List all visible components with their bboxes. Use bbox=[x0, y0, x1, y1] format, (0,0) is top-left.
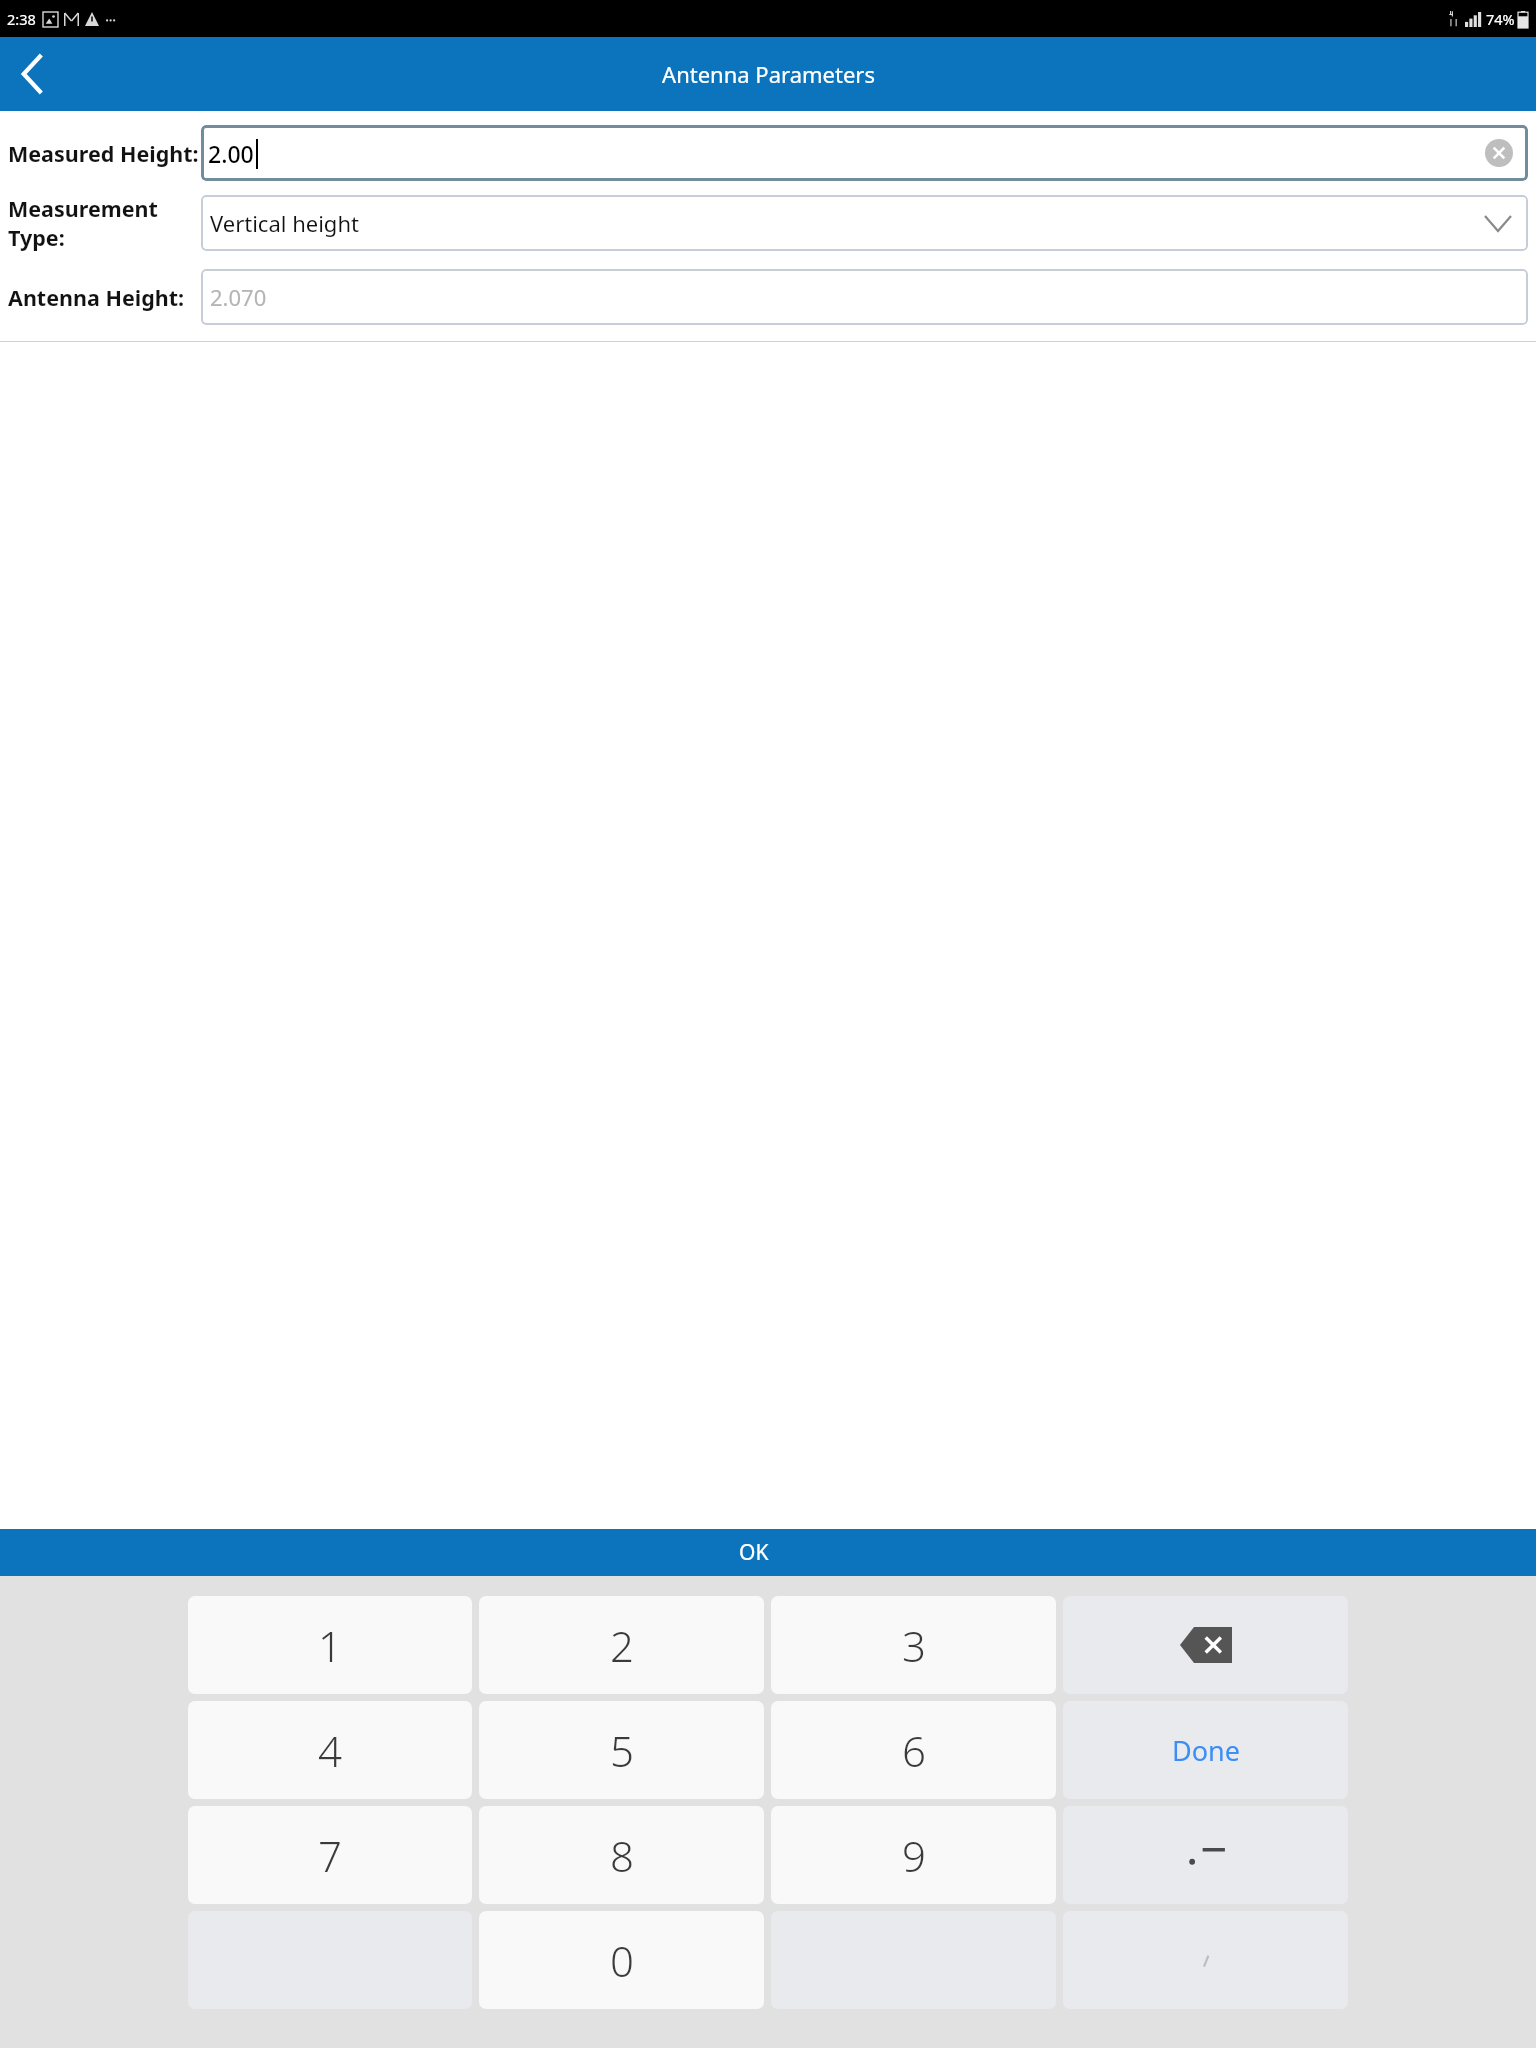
staticText: 7 bbox=[318, 1827, 342, 1884]
staticText: Antenna Parameters bbox=[662, 59, 875, 89]
button[interactable]: 3 bbox=[771, 1596, 1056, 1694]
staticText: Measurement Type: bbox=[8, 194, 201, 252]
staticText: Measured Height: bbox=[8, 139, 199, 168]
button[interactable]: 2 bbox=[479, 1596, 764, 1694]
button[interactable]: 2.070 bbox=[201, 269, 1528, 325]
button[interactable]: 5 bbox=[479, 1701, 764, 1799]
staticText: Vertical height bbox=[210, 208, 359, 238]
button[interactable]: Done bbox=[1063, 1701, 1348, 1799]
staticText: 2.00 bbox=[208, 138, 254, 169]
button[interactable]: 9 bbox=[771, 1806, 1056, 1904]
staticText: 74% bbox=[1486, 9, 1515, 29]
staticText: 6 bbox=[902, 1722, 926, 1779]
button[interactable]: 2.00 bbox=[201, 125, 1528, 181]
button[interactable]: Backspace bbox=[1063, 1596, 1348, 1694]
staticText: 2 bbox=[610, 1617, 634, 1674]
button[interactable]: 6 bbox=[771, 1701, 1056, 1799]
button[interactable]: OK bbox=[0, 1529, 1536, 1576]
staticText: 2.070 bbox=[210, 282, 267, 312]
staticText: 0 bbox=[610, 1932, 634, 1989]
button[interactable]: 1 bbox=[188, 1596, 472, 1694]
staticText: Done bbox=[1172, 1732, 1240, 1769]
button[interactable]: Clear bbox=[1482, 136, 1516, 170]
button[interactable]: Back bbox=[0, 42, 64, 106]
staticText: 8 bbox=[610, 1827, 634, 1884]
staticText: 3 bbox=[902, 1617, 926, 1674]
button[interactable]: 4 bbox=[188, 1701, 472, 1799]
button[interactable]: 8 bbox=[479, 1806, 764, 1904]
button[interactable]: Vertical height bbox=[201, 195, 1528, 251]
staticText: OK bbox=[739, 1538, 769, 1567]
button[interactable]: 7 bbox=[188, 1806, 472, 1904]
button[interactable]: Dot or dash bbox=[1063, 1806, 1348, 1904]
staticText: Antenna Height: bbox=[8, 283, 185, 312]
staticText: 2:38 bbox=[7, 9, 36, 29]
staticText: 1 bbox=[318, 1617, 342, 1674]
button[interactable]: 0 bbox=[479, 1911, 764, 2009]
staticText: 5 bbox=[610, 1722, 634, 1779]
staticText: 4 bbox=[318, 1722, 342, 1779]
staticText: 9 bbox=[902, 1827, 926, 1884]
